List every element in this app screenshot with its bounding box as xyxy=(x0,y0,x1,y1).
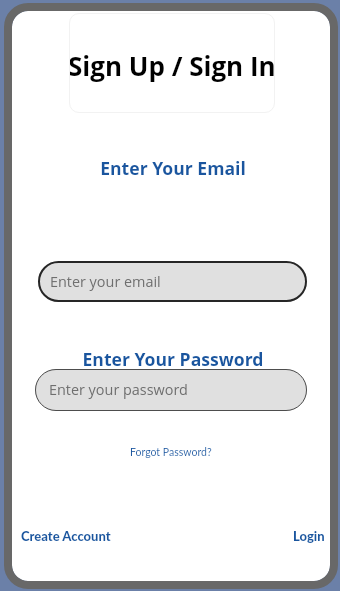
staticText: Create Account xyxy=(21,528,111,544)
button[interactable]: Forgot Password? xyxy=(118,438,224,467)
staticText: Enter your email xyxy=(50,272,161,292)
button[interactable]: Enter your email xyxy=(38,261,307,302)
staticText: Sign Up / Sign In xyxy=(68,48,276,83)
button[interactable]: Login xyxy=(281,518,337,554)
staticText: Enter Your Email xyxy=(14,156,332,180)
staticText: Login xyxy=(293,528,325,544)
button[interactable]: Enter your password xyxy=(35,369,307,411)
staticText: Enter your password xyxy=(49,380,188,400)
staticText: Forgot Password? xyxy=(130,446,212,459)
button[interactable]: Create Account xyxy=(9,518,123,554)
staticText: Enter Your Password xyxy=(14,347,332,371)
